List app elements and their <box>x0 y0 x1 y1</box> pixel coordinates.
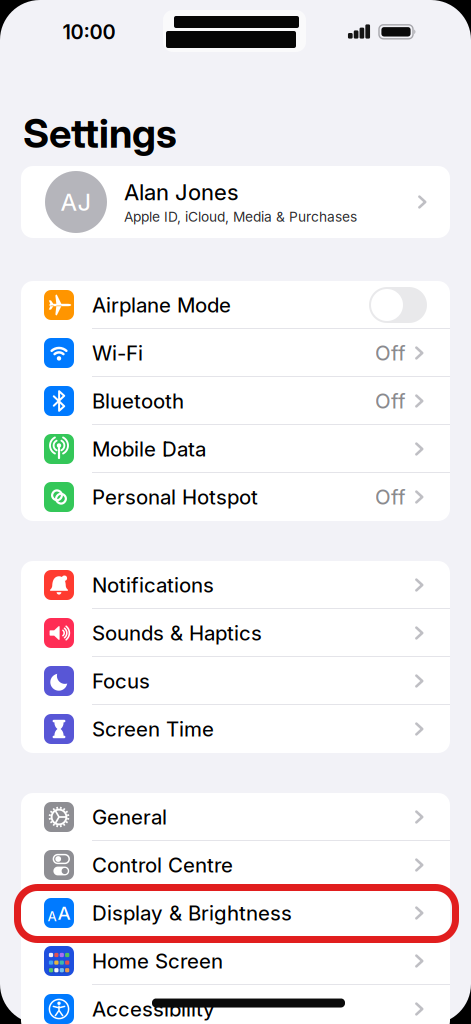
button[interactable]: Control Centre <box>21 841 450 889</box>
button[interactable]: Bluetooth <box>21 377 450 425</box>
button[interactable]: Mobile Data <box>21 425 450 473</box>
staticText: AJ <box>60 187 91 216</box>
button[interactable]: Focus <box>21 657 450 705</box>
staticText: Sounds & Haptics <box>92 621 262 645</box>
staticText: Home Screen <box>92 949 223 973</box>
button[interactable]: AJ <box>21 166 450 238</box>
staticText: Control Centre <box>92 853 233 877</box>
button[interactable]: Wi-Fi <box>21 329 450 377</box>
staticText: Alan Jones <box>124 179 239 205</box>
staticText: Off <box>375 485 406 509</box>
button[interactable]: Notifications <box>21 561 450 609</box>
staticText: General <box>92 805 167 829</box>
staticText: Accessibility <box>92 997 215 1021</box>
staticText: Wi-Fi <box>92 341 143 365</box>
staticText: Bluetooth <box>92 389 184 413</box>
staticText: Off <box>375 389 406 413</box>
button[interactable]: Accessibility <box>21 985 450 1024</box>
staticText: A <box>57 902 70 924</box>
staticText: A <box>47 908 56 924</box>
button[interactable]: Personal Hotspot <box>21 473 450 521</box>
button[interactable]: Sounds & Haptics <box>21 609 450 657</box>
button[interactable]: General <box>21 793 450 841</box>
staticText: 10:00 <box>62 20 115 44</box>
staticText: Mobile Data <box>92 437 206 461</box>
staticText: Display & Brightness <box>92 901 292 925</box>
button[interactable]: Home Screen <box>21 937 450 985</box>
staticText: Notifications <box>92 573 214 597</box>
staticText: Off <box>375 341 406 365</box>
staticText: Airplane Mode <box>92 293 231 317</box>
staticText: Screen Time <box>92 717 214 741</box>
staticText: Settings <box>23 109 177 157</box>
button[interactable]: A <box>21 889 450 937</box>
staticText: Focus <box>92 669 150 693</box>
staticText: Apple ID, iCloud, Media & Purchases <box>124 208 357 225</box>
button[interactable]: Airplane Mode <box>369 287 427 323</box>
button[interactable]: Screen Time <box>21 705 450 753</box>
staticText: Personal Hotspot <box>92 485 258 509</box>
